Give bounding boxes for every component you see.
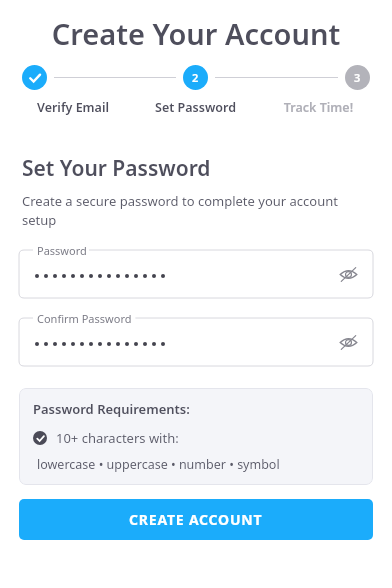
staticText: 10+ characters with:	[56, 429, 179, 447]
button[interactable]: Track Time!	[345, 65, 370, 90]
staticText: 2	[192, 70, 199, 85]
staticText: Create a secure password to complete you…	[22, 192, 370, 229]
staticText: Set Your Password	[22, 154, 211, 183]
button[interactable]: Verify Email	[22, 65, 47, 90]
staticText: Confirm Password	[37, 311, 132, 326]
staticText: lowercase • uppercase • number • symbol	[37, 456, 280, 473]
button[interactable]: Show password	[335, 261, 361, 287]
button[interactable]: CREATE ACCOUNT	[19, 499, 373, 540]
staticText: Track Time!	[257, 99, 380, 116]
staticText: Create Your Account	[0, 14, 392, 53]
button[interactable]: Set Password	[183, 65, 208, 90]
staticText: 3	[354, 70, 361, 85]
staticText: Verify Email	[12, 99, 134, 116]
staticText: CREATE ACCOUNT	[129, 510, 263, 529]
staticText: Password	[37, 243, 87, 258]
button[interactable]: Show password	[335, 329, 361, 355]
staticText: Password Requirements:	[33, 400, 190, 418]
button[interactable]: Confirm Password	[19, 318, 373, 366]
staticText: Set Password	[134, 99, 257, 116]
button[interactable]: Password	[19, 250, 373, 298]
